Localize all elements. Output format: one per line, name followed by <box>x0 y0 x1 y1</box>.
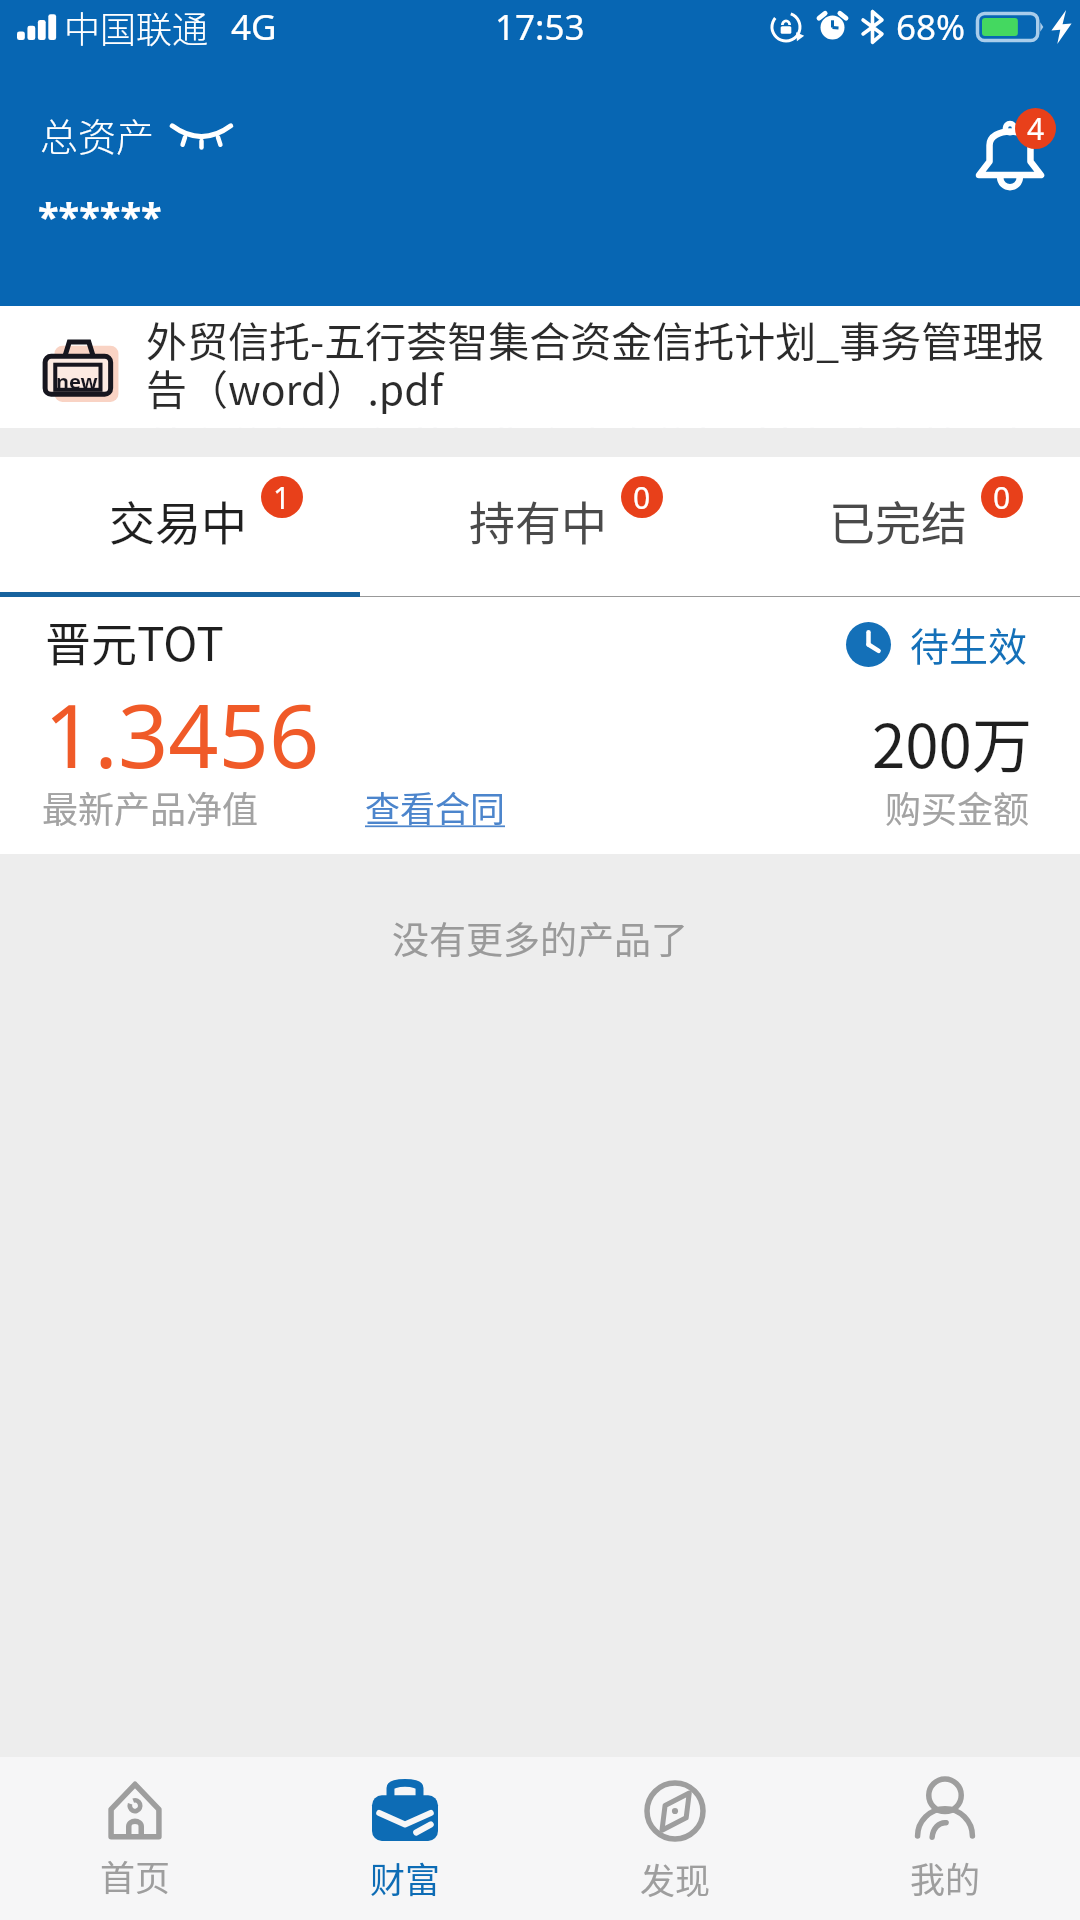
staticText: 购买金额 <box>885 781 1030 833</box>
button[interactable]: 首页 <box>0 1757 270 1920</box>
button[interactable]: 财富 <box>270 1757 540 1920</box>
staticText: 0 <box>993 477 1011 518</box>
staticText: 外贸信托-五行荟智集合资金信托计划_事务管理报 <box>147 414 1046 473</box>
staticText: 4 <box>1027 108 1045 149</box>
staticText: 我的 <box>910 1852 981 1903</box>
staticText: 已完结 <box>829 487 967 554</box>
staticText: 4G <box>231 3 277 51</box>
staticText: 首页 <box>100 1850 171 1901</box>
staticText: 发现 <box>640 1853 711 1904</box>
staticText: 待生效 <box>910 616 1028 672</box>
staticText: ****** <box>38 190 162 242</box>
button[interactable]: 查看合同 <box>363 781 508 832</box>
staticText: 中国联通 <box>64 1 209 53</box>
other: Toggle balance visibility <box>171 121 232 148</box>
button[interactable]: 持有中 <box>360 457 720 597</box>
button[interactable]: 我的 <box>810 1757 1080 1920</box>
staticText: 财富 <box>370 1852 441 1903</box>
button[interactable]: new <box>0 306 1080 428</box>
button[interactable]: 交易中 <box>0 457 360 597</box>
staticText: 68% <box>896 3 966 51</box>
staticText: 晋元TOT <box>45 608 224 675</box>
staticText: 最新产品净值 <box>42 781 259 833</box>
staticText: 1 <box>273 477 291 518</box>
staticText: 200万 <box>872 698 1032 785</box>
staticText: 没有更多的产品了 <box>392 911 688 965</box>
button[interactable]: 已完结 <box>720 457 1080 597</box>
staticText: 17:53 <box>495 3 585 51</box>
staticText: 0 <box>633 477 651 518</box>
button[interactable]: 发现 <box>540 1757 810 1920</box>
staticText: 交易中 <box>109 487 247 554</box>
button[interactable]: 晋元TOT <box>0 597 1080 854</box>
staticText: new <box>56 368 98 391</box>
staticText: 总资产 <box>40 107 155 162</box>
staticText: 1.3456 <box>44 674 320 794</box>
button[interactable]: 总资产 <box>40 107 232 162</box>
staticText: 外贸信托-五行荟智集合资金信托计划_事务管理报告（word）.pdf <box>146 309 1074 417</box>
staticText: 持有中 <box>469 487 607 554</box>
button[interactable]: Notifications <box>962 96 1062 202</box>
